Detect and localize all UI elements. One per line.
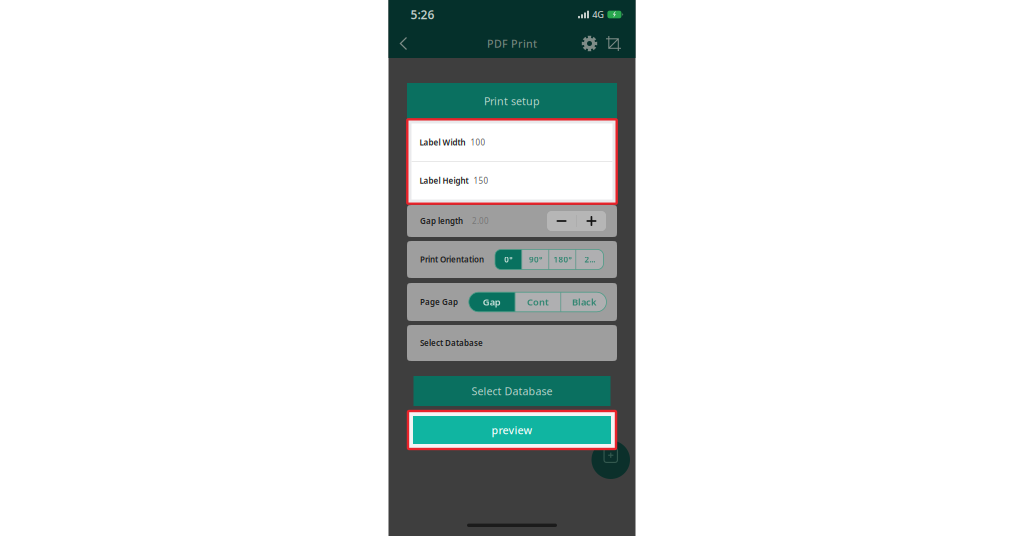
button[interactable]: 180° bbox=[548, 249, 575, 269]
button[interactable]: Gap bbox=[469, 292, 515, 312]
staticText: 4G bbox=[592, 8, 604, 21]
staticText: 180° bbox=[553, 254, 571, 265]
staticText: Gap bbox=[483, 296, 501, 308]
staticText: Print Orientation bbox=[420, 254, 484, 265]
button[interactable]: New document bbox=[591, 440, 630, 479]
staticText: Select Database bbox=[471, 384, 552, 398]
button[interactable]: Back bbox=[392, 28, 414, 58]
button[interactable]: Settings bbox=[577, 28, 601, 58]
staticText: Select Database bbox=[420, 338, 483, 348]
staticText: Cont bbox=[527, 296, 549, 308]
staticText: Print setup bbox=[484, 94, 540, 108]
staticText: Label Width bbox=[419, 137, 465, 148]
staticText: 2.00 bbox=[472, 216, 489, 226]
button[interactable]: Crop bbox=[601, 28, 625, 58]
staticText: Page Gap bbox=[420, 297, 458, 307]
staticText: preview bbox=[491, 423, 532, 437]
staticText: 5:26 bbox=[410, 6, 434, 22]
staticText: Black bbox=[572, 296, 596, 308]
staticText: 100 bbox=[470, 137, 485, 148]
staticText: 150 bbox=[473, 175, 488, 186]
staticText: Gap length bbox=[420, 216, 463, 226]
button[interactable]: Increase bbox=[577, 211, 606, 231]
staticText: 0° bbox=[504, 254, 512, 265]
button[interactable]: preview bbox=[406, 409, 618, 451]
staticText: Label Height bbox=[419, 175, 468, 186]
button[interactable]: Decrease bbox=[547, 211, 576, 231]
button[interactable]: Cont bbox=[515, 292, 560, 312]
staticText: PDF Print bbox=[487, 36, 537, 51]
staticText: 90° bbox=[529, 254, 542, 265]
button[interactable]: 90° bbox=[521, 249, 548, 269]
button[interactable]: 0° bbox=[495, 249, 521, 269]
button[interactable]: Select Database bbox=[413, 376, 610, 406]
button[interactable]: 2... bbox=[575, 249, 603, 269]
button[interactable]: Black bbox=[560, 292, 606, 312]
staticText: 2... bbox=[584, 254, 595, 265]
